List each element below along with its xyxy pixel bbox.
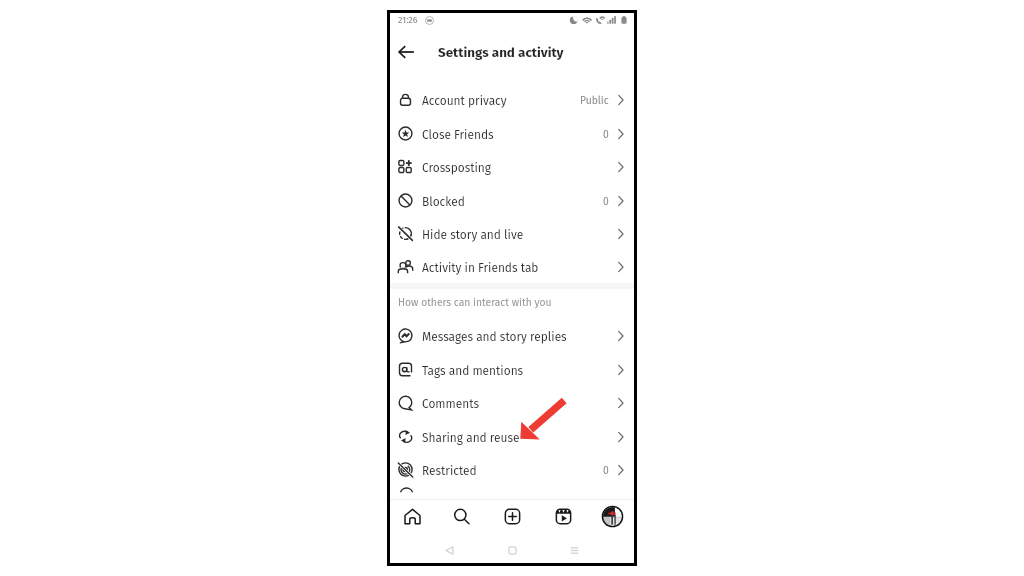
button[interactable]: Blocked: [390, 184, 634, 217]
button[interactable]: Hide story and live: [390, 217, 634, 250]
staticText: 0: [603, 195, 609, 207]
staticText: 0: [603, 128, 609, 140]
button[interactable]: Restricted: [390, 453, 634, 486]
button[interactable]: Comments: [390, 386, 634, 419]
button[interactable]: Back: [438, 539, 460, 561]
button[interactable]: Reels: [550, 503, 576, 529]
staticText: 21:26: [398, 15, 418, 26]
staticText: Tags and mentions: [422, 364, 524, 378]
button[interactable]: Activity in Friends tab: [390, 250, 634, 283]
button[interactable]: Crossposting: [390, 150, 634, 183]
button[interactable]: Tags and mentions: [390, 353, 634, 386]
staticText: How others can interact with you: [398, 296, 552, 308]
button[interactable]: Messages and story replies: [390, 319, 634, 352]
button[interactable]: Close Friends: [390, 117, 634, 150]
button[interactable]: Create: [499, 503, 525, 529]
staticText: Settings and activity: [438, 44, 564, 60]
staticText: 0: [603, 464, 609, 476]
button[interactable]: Sharing and reuse: [390, 420, 634, 453]
button[interactable]: Home: [501, 539, 523, 561]
staticText: Account privacy: [422, 94, 507, 108]
button[interactable]: Account privacy: [390, 83, 634, 116]
button[interactable]: Back: [393, 39, 419, 65]
button[interactable]: Home: [399, 503, 425, 529]
button[interactable]: Search: [448, 503, 474, 529]
staticText: Comments: [422, 397, 480, 411]
staticText: Hide story and live: [422, 228, 524, 242]
staticText: Sharing and reuse: [422, 431, 520, 445]
staticText: Activity in Friends tab: [422, 261, 539, 275]
button[interactable]: Profile: [599, 503, 625, 529]
staticText: Close Friends: [422, 128, 494, 142]
staticText: Public: [580, 94, 609, 106]
staticText: Blocked: [422, 195, 465, 209]
staticText: Crossposting: [422, 161, 492, 175]
staticText: Restricted: [422, 464, 477, 478]
button[interactable]: Recents: [563, 539, 585, 561]
staticText: Messages and story replies: [422, 330, 567, 344]
